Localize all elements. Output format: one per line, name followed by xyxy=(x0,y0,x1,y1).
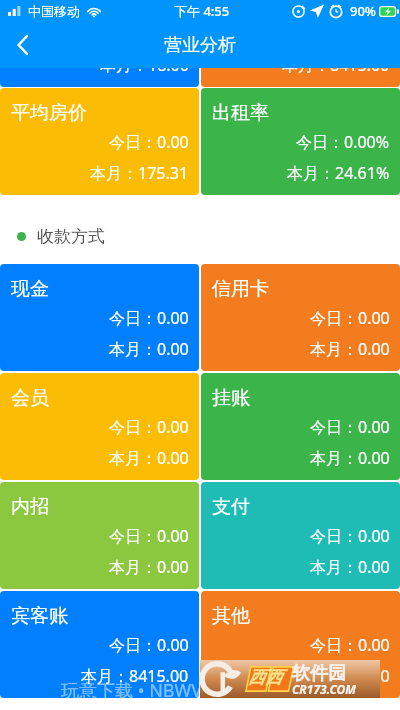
staticText: 今日：0.00 xyxy=(310,525,390,547)
staticText: 今日：0.00% xyxy=(296,131,390,153)
staticText: 其他 xyxy=(212,604,250,628)
button[interactable]: 入住率 xyxy=(0,68,199,87)
staticText: 90% xyxy=(350,2,376,20)
staticText: 本月：0.00 xyxy=(109,447,189,469)
staticText: 本月：0.00 xyxy=(310,447,390,469)
button[interactable]: 其他 xyxy=(201,591,400,698)
staticText: 挂账 xyxy=(212,386,250,410)
staticText: 本月：0.00 xyxy=(310,338,390,360)
button[interactable]: 现金 xyxy=(0,264,199,371)
staticText: 今日：0.00 xyxy=(310,416,390,438)
staticText: 今日：0.00 xyxy=(109,525,189,547)
button[interactable]: 挂账 xyxy=(201,373,400,480)
staticText: 本月：24.61% xyxy=(287,162,390,184)
staticText: 西西 xyxy=(248,667,282,688)
button[interactable]: 支付 xyxy=(201,482,400,589)
staticText: 中国移动 xyxy=(28,3,80,19)
staticText: 今日：0.00 xyxy=(109,307,189,329)
button[interactable]: 内招 xyxy=(0,482,199,589)
staticText: 今日：0.00 xyxy=(310,634,390,656)
button[interactable]: 宾客账 xyxy=(0,591,199,698)
staticText: 出租率 xyxy=(212,101,269,125)
staticText: 支付 xyxy=(212,495,250,519)
staticText: 玩意下载 • NBWVXH.COM xyxy=(61,678,272,703)
staticText: 平均房价 xyxy=(11,101,87,125)
button[interactable]: 出租率 xyxy=(201,88,400,195)
staticText: 内招 xyxy=(11,495,49,519)
staticText: 会员 xyxy=(11,386,49,410)
button[interactable]: 会员 xyxy=(0,373,199,480)
staticText: 本月：0.00 xyxy=(310,556,390,578)
staticText: 下午 4:55 xyxy=(174,2,230,20)
staticText: 今日：0.00 xyxy=(310,307,390,329)
staticText: 营业分析 xyxy=(164,34,236,57)
staticText: 今日：0.00 xyxy=(109,634,189,656)
staticText: 软件园 xyxy=(292,662,346,685)
button[interactable]: Back xyxy=(0,22,46,68)
button[interactable]: 平均房价 xyxy=(0,88,199,195)
staticText: 收款方式 xyxy=(37,226,105,247)
button[interactable]: 营业收入 xyxy=(201,68,400,87)
staticText: 信用卡 xyxy=(212,277,269,301)
staticText: 现金 xyxy=(11,277,49,301)
staticText: 今日：0.00 xyxy=(109,131,189,153)
staticText: 宾客账 xyxy=(11,604,68,628)
staticText: 本月：175.31 xyxy=(90,162,189,184)
staticText: 本月：0.00 xyxy=(310,665,390,687)
staticText: 今日：0.00 xyxy=(109,416,189,438)
staticText: CR173.COM xyxy=(292,681,356,697)
staticText: 本月：0.00 xyxy=(109,556,189,578)
staticText: 本月：18.00 xyxy=(100,68,189,76)
button[interactable]: 信用卡 xyxy=(201,264,400,371)
staticText: 本月：0.00 xyxy=(109,338,189,360)
staticText: 本月：8415.00 xyxy=(81,665,189,687)
staticText: 本月：8415.00 xyxy=(282,68,390,76)
